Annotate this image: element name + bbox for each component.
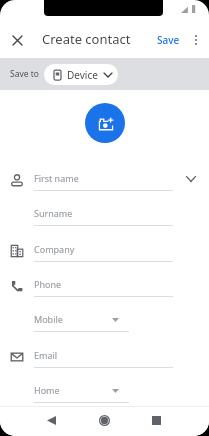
staticText: Surname [34, 207, 73, 219]
button[interactable]: Recent apps [140, 404, 173, 436]
button[interactable]: First name [0, 166, 209, 191]
staticText: Mobile [34, 313, 63, 325]
staticText: Create contact [42, 30, 131, 48]
button[interactable]: Company [0, 237, 209, 262]
button[interactable]: Device [44, 64, 118, 85]
staticText: Email [34, 349, 58, 361]
button[interactable]: Surname [0, 201, 209, 226]
button[interactable]: Add contact photo [85, 103, 125, 143]
button[interactable]: Email [0, 343, 209, 368]
staticText: First name [34, 172, 79, 184]
button[interactable]: Home [88, 404, 121, 436]
staticText: Phone [34, 278, 62, 290]
button[interactable]: Save [152, 29, 185, 51]
button[interactable]: Back [35, 404, 68, 436]
staticText: Company [34, 243, 75, 255]
button[interactable]: More options [184, 28, 207, 51]
staticText: Device [67, 68, 98, 82]
staticText: Save to [10, 68, 39, 80]
button[interactable]: Phone [0, 272, 209, 297]
button[interactable]: Home [0, 378, 209, 403]
staticText: Home [34, 384, 60, 396]
button[interactable]: Close [5, 28, 29, 52]
button[interactable]: Mobile [0, 307, 209, 332]
staticText: Save [157, 33, 180, 47]
